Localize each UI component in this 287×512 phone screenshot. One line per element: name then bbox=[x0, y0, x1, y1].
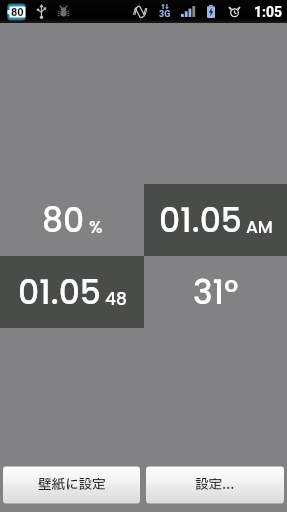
staticText: 80 bbox=[11, 6, 24, 19]
staticText: % bbox=[89, 215, 103, 239]
button[interactable]: 設定... bbox=[146, 466, 284, 504]
staticText: AM bbox=[246, 215, 273, 239]
staticText: 01.05 bbox=[159, 197, 242, 243]
button[interactable]: 31° bbox=[144, 256, 287, 328]
staticText: 設定... bbox=[195, 475, 235, 495]
button[interactable]: 80 bbox=[0, 184, 144, 256]
button[interactable]: 01.05 bbox=[144, 184, 287, 256]
staticText: 31° bbox=[193, 269, 239, 315]
staticText: 80 bbox=[42, 197, 85, 243]
staticText: 01.05 bbox=[18, 269, 101, 315]
staticText: 1:05 bbox=[254, 4, 283, 20]
staticText: 48 bbox=[105, 287, 127, 311]
staticText: 壁紙に設定 bbox=[38, 475, 106, 495]
button[interactable]: 01.05 bbox=[0, 256, 144, 328]
button[interactable]: 壁紙に設定 bbox=[3, 466, 140, 504]
staticText: 3G bbox=[159, 9, 170, 20]
